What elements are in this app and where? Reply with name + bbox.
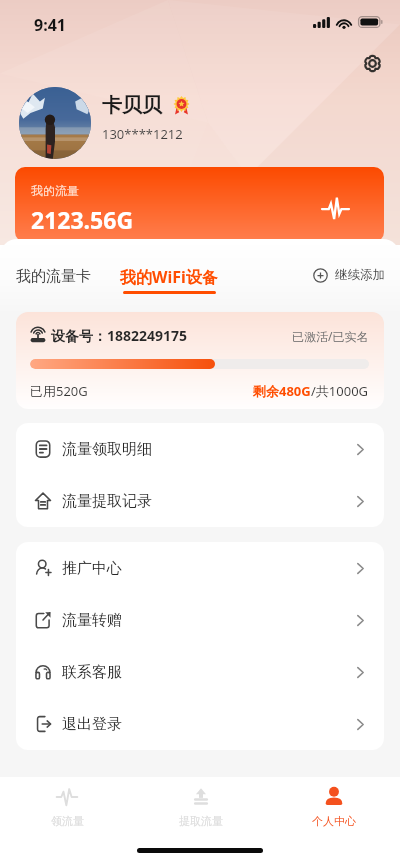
staticText: /共1000G — [311, 382, 369, 400]
staticText: 流量领取明细 — [62, 440, 152, 459]
staticText: 退出登录 — [62, 715, 122, 734]
button[interactable]: 流量提取记录 — [16, 475, 384, 527]
button[interactable]: Settings — [356, 47, 388, 79]
button[interactable]: 设备号：1882249175 — [16, 312, 384, 409]
button[interactable]: 流量转赠 — [16, 594, 384, 646]
button[interactable]: 我的流量 — [15, 167, 384, 242]
staticText: 9:41 — [34, 14, 66, 36]
staticText: 剩余480G — [253, 382, 311, 400]
button[interactable]: 我的WiFi设备 — [120, 266, 218, 294]
button[interactable]: 退出登录 — [16, 698, 384, 750]
button[interactable]: 提取流量 — [134, 777, 267, 836]
staticText: 推广中心 — [62, 559, 122, 578]
staticText: 130****1212 — [102, 125, 183, 143]
staticText: 卡贝贝 — [102, 93, 162, 118]
button[interactable]: 领流量 — [0, 777, 134, 836]
button[interactable]: 联系客服 — [16, 646, 384, 698]
staticText: 流量转赠 — [62, 611, 122, 630]
staticText: 流量提取记录 — [62, 492, 152, 511]
staticText: 个人中心 — [312, 814, 356, 828]
button[interactable]: 我的流量卡 — [16, 267, 91, 286]
staticText: 设备号：1882249175 — [51, 326, 188, 345]
staticText: 我的流量卡 — [16, 267, 91, 286]
staticText: 联系客服 — [62, 663, 122, 682]
button[interactable]: 流量领取明细 — [16, 423, 384, 475]
staticText: 我的WiFi设备 — [120, 266, 218, 288]
button[interactable]: 个人中心 — [267, 777, 400, 836]
staticText: 提取流量 — [179, 814, 223, 828]
staticText: 已激活/已实名 — [292, 328, 369, 344]
staticText: 我的流量 — [31, 183, 79, 198]
staticText: 2123.56G — [31, 204, 134, 235]
staticText: 领流量 — [51, 814, 84, 828]
staticText: 继续添加 — [335, 267, 385, 283]
staticText: 已用520G — [30, 382, 88, 400]
button[interactable]: 推广中心 — [16, 542, 384, 594]
button[interactable]: 继续添加 — [313, 267, 385, 283]
